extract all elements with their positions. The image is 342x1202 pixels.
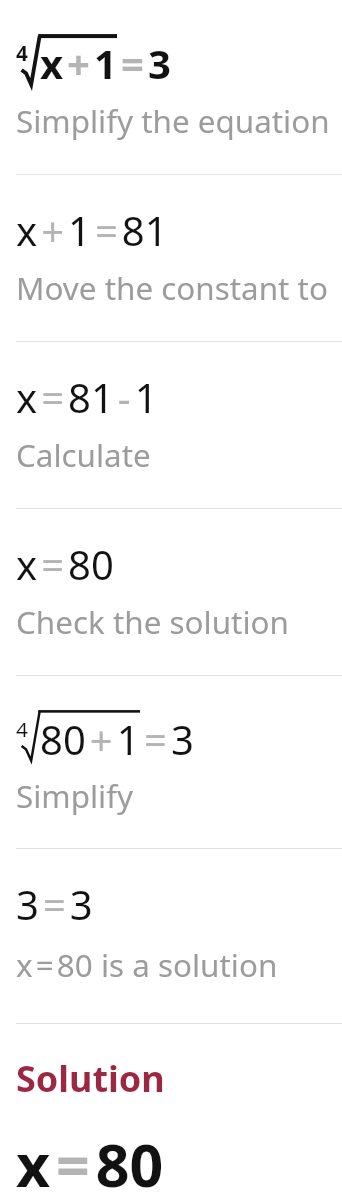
staticText: x = 81 - 1	[16, 370, 158, 424]
button[interactable]: 4	[0, 0, 342, 175]
button[interactable]: 3 = 3	[0, 849, 342, 1024]
staticText: Check the solution	[16, 600, 342, 643]
staticText: Calculate	[16, 433, 342, 476]
staticText: 3 = 3	[16, 877, 93, 931]
staticText: x + 1	[40, 36, 117, 90]
staticText: = 3	[117, 36, 171, 90]
staticText: x = 80	[16, 537, 114, 591]
button[interactable]: x + 1 = 81	[0, 175, 342, 342]
staticText: x + 1 = 81	[16, 203, 168, 257]
staticText: Simplify the equation	[16, 99, 342, 142]
staticText: 80 + 1	[40, 712, 140, 766]
staticText: x = 80 is a solution	[16, 943, 342, 986]
staticText: Simplify	[16, 774, 342, 817]
button[interactable]: x = 81 - 1	[0, 342, 342, 509]
staticText: Move the constant to the other side	[16, 266, 342, 309]
staticText: Solution	[16, 1054, 165, 1103]
button[interactable]: Solution	[0, 1024, 342, 1104]
staticText: = 3	[140, 712, 194, 766]
button[interactable]: x = 80	[0, 509, 342, 676]
staticText: 4	[16, 715, 22, 743]
button[interactable]: 4	[0, 676, 342, 849]
staticText: x = 80	[16, 1124, 164, 1202]
staticText: 4	[16, 39, 22, 67]
